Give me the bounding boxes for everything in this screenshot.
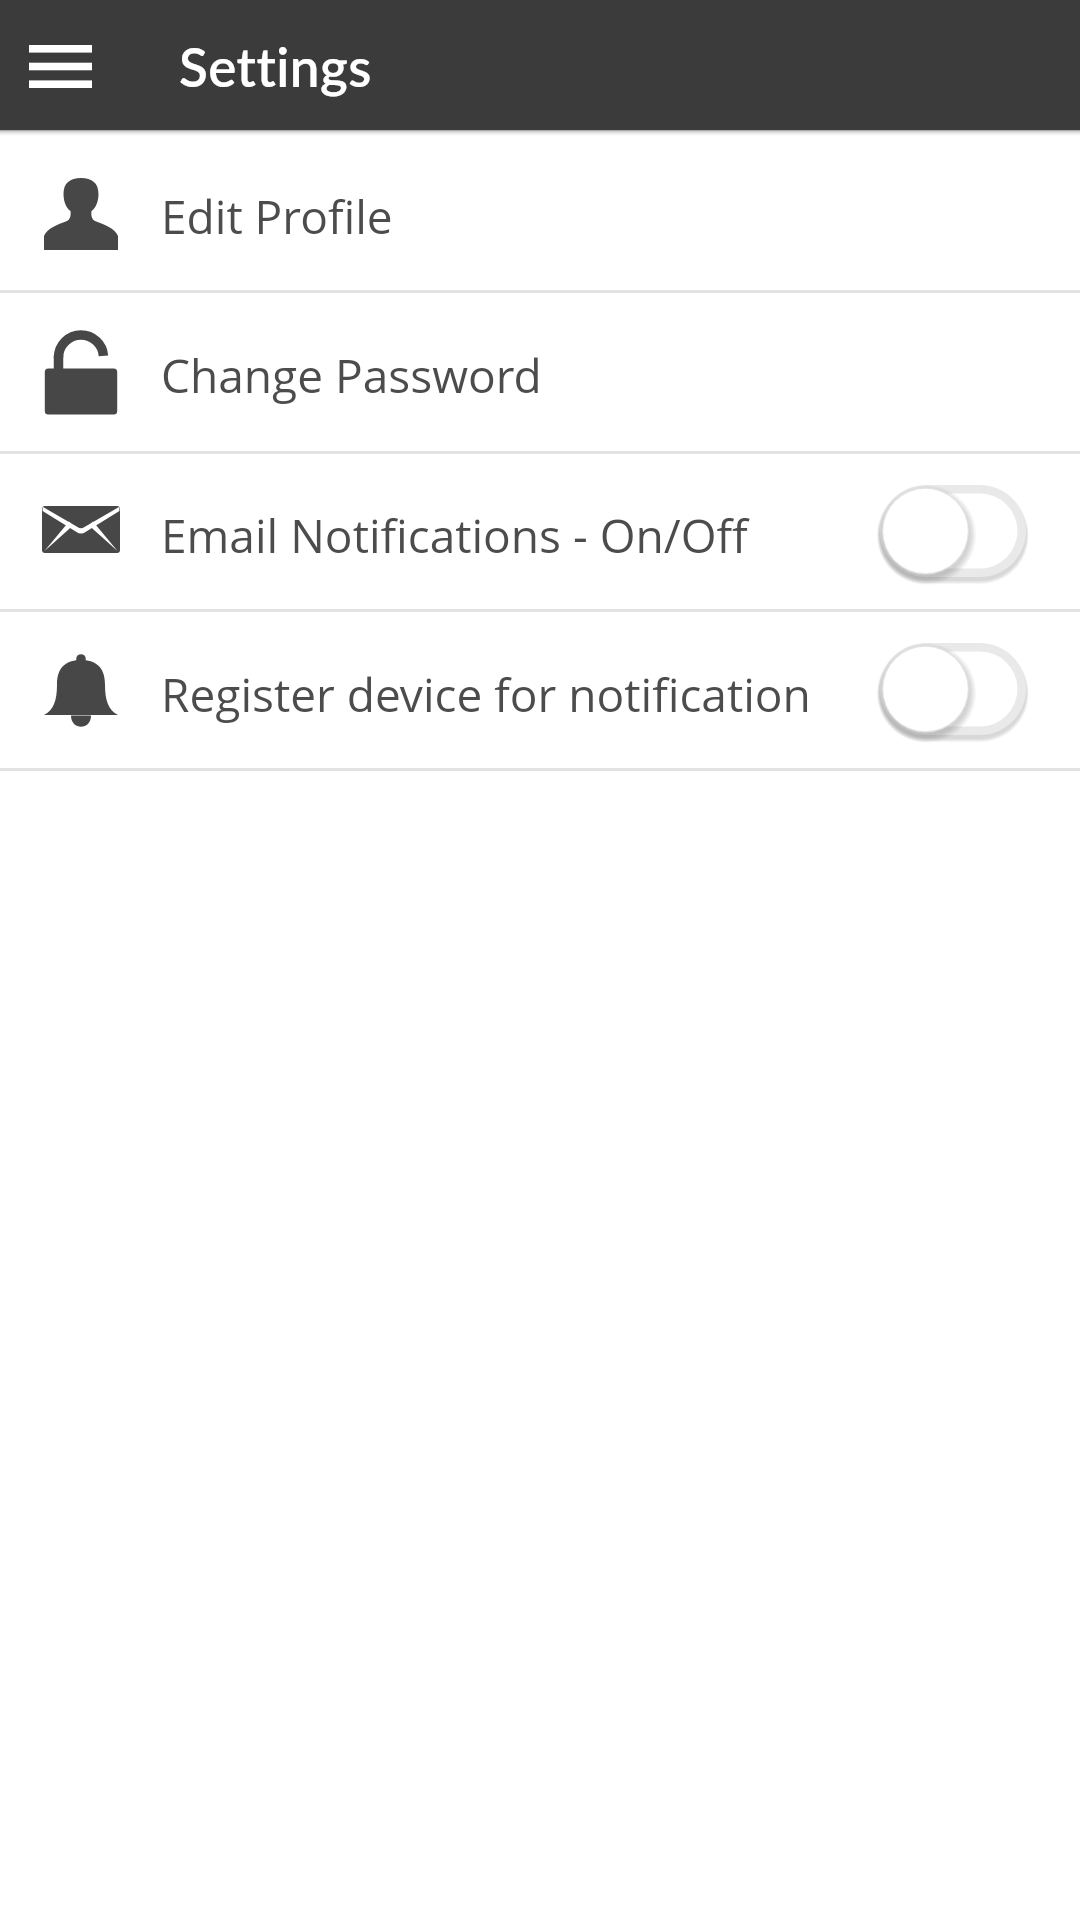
button[interactable]: Toggle switch, off <box>880 485 1026 577</box>
staticText: Settings <box>179 35 372 99</box>
button[interactable]: Register device for notification <box>0 612 1080 768</box>
staticText: Email Notifications - On/Off <box>161 504 748 567</box>
button[interactable]: Email Notifications - On/Off <box>0 454 1080 609</box>
staticText: Edit Profile <box>161 185 393 248</box>
button[interactable]: Edit Profile <box>0 130 1080 290</box>
staticText: Change Password <box>161 344 542 407</box>
button[interactable]: Toggle switch, off <box>880 643 1026 735</box>
button[interactable]: Change Password <box>0 293 1080 451</box>
button[interactable]: Open navigation menu <box>20 25 100 105</box>
staticText: Register device for notification <box>161 663 811 726</box>
